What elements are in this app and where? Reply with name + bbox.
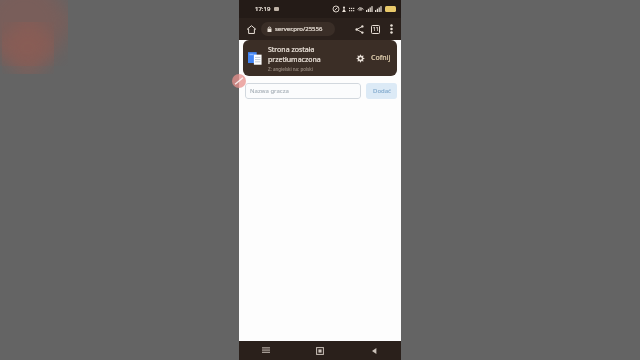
button[interactable]: Share	[351, 21, 367, 37]
staticText: server.pro/25556	[275, 25, 323, 33]
button[interactable]: Recent apps	[239, 341, 293, 360]
staticText: 17:19	[255, 5, 271, 13]
staticText: Cofnij	[371, 53, 391, 63]
button[interactable]: server.pro/25556	[261, 22, 335, 36]
button[interactable]: Nazwa gracza	[245, 83, 361, 99]
staticText: Dodaj operatora	[245, 62, 327, 76]
staticText: Strona została	[268, 45, 315, 55]
button[interactable]: Home	[243, 21, 259, 37]
staticText: przetłumaczona	[268, 55, 321, 65]
staticText: Dodać	[373, 87, 391, 95]
button[interactable]: Dodać	[366, 83, 397, 99]
button[interactable]: Tabs	[367, 21, 383, 37]
staticText: Z: angielski na: polski	[268, 66, 313, 72]
button[interactable]: Back	[347, 341, 401, 360]
button[interactable]: More options	[383, 21, 399, 37]
button[interactable]: Translate settings	[351, 49, 369, 67]
button[interactable]: Cofnij	[371, 53, 391, 63]
button[interactable]: Home	[293, 341, 347, 360]
staticText: Nazwa gracza	[250, 87, 289, 95]
staticText: 11	[373, 26, 379, 33]
